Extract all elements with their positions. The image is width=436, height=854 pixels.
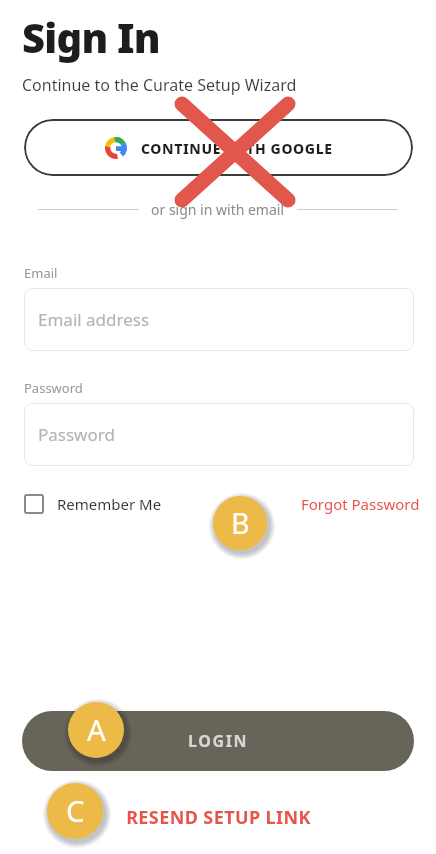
button[interactable]: RESEND SETUP LINK (0, 805, 436, 830)
staticText: or sign in with email (151, 200, 285, 219)
button[interactable]: CONTINUE WITH GOOGLE (24, 119, 413, 176)
staticText: Password (38, 423, 115, 446)
staticText: RESEND SETUP LINK (126, 805, 311, 830)
button[interactable]: LOGIN (22, 711, 414, 771)
button[interactable]: Password (24, 403, 414, 466)
staticText: Continue to the Curate Setup Wizard (22, 74, 297, 96)
staticText: Email (24, 264, 58, 282)
staticText: Password (24, 379, 83, 397)
staticText: Forgot Password (301, 494, 420, 514)
button[interactable]: Remember Me (24, 494, 162, 514)
staticText: CONTINUE WITH GOOGLE (141, 139, 333, 158)
staticText: C (66, 791, 85, 831)
staticText: B (231, 504, 250, 543)
staticText: A (87, 710, 106, 750)
staticText: Sign In (22, 10, 160, 64)
button[interactable]: Email address (24, 288, 414, 351)
staticText: Remember Me (57, 494, 162, 514)
staticText: Email address (38, 308, 150, 331)
staticText: LOGIN (188, 730, 249, 752)
button[interactable]: Forgot Password (301, 494, 420, 514)
